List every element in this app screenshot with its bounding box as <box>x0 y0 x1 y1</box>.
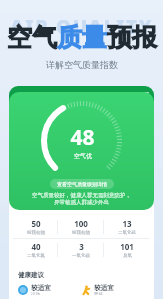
staticText: 3 <box>79 241 84 252</box>
button[interactable]: 3 <box>58 239 104 261</box>
staticText: 空气优 <box>74 152 92 160</box>
staticText: 预报 <box>107 22 157 53</box>
button[interactable]: 运动 <box>18 284 81 295</box>
staticText: 健康建议 <box>18 271 44 279</box>
staticText: 运动 <box>31 292 40 295</box>
staticText: 查看空气质量级别详情 <box>57 181 107 187</box>
other: 运动 <box>18 285 28 295</box>
staticText: 较适宜 <box>31 284 51 292</box>
staticText: 臭氧 <box>123 253 132 259</box>
staticText: 质量 <box>57 22 107 53</box>
staticText: 空气质量较好，健康人群无需刻意防护， <box>32 192 131 199</box>
staticText: 48 <box>70 123 95 152</box>
staticText: AIR QUALITY <box>10 14 153 40</box>
staticText: 细颗粒物 <box>27 230 45 236</box>
button[interactable]: 101 <box>104 239 150 261</box>
button[interactable]: 48 <box>9 92 154 210</box>
staticText: 二氧化氮 <box>27 253 45 259</box>
staticText: 13:30 <box>136 91 149 98</box>
staticText: 空气 <box>7 22 57 53</box>
staticText: 细颗粒物 <box>72 230 90 236</box>
button[interactable]: 查看空气质量级别详情 <box>57 181 107 187</box>
button[interactable]: 50 <box>13 216 58 238</box>
staticText: 13 <box>122 218 132 229</box>
staticText: 较适宜 <box>94 284 114 292</box>
staticText: 一氧化碳 <box>72 253 90 259</box>
button[interactable]: 40 <box>13 239 58 261</box>
staticText: 100 <box>74 218 88 229</box>
staticText: 二氧化硫 <box>118 230 136 236</box>
staticText: 50 <box>31 218 41 229</box>
button[interactable]: 13 <box>104 216 150 238</box>
button[interactable]: 晨练 <box>81 284 145 295</box>
staticText: 晨练 <box>94 292 103 295</box>
staticText: 101 <box>120 241 134 252</box>
other: 晨练 <box>81 285 91 295</box>
staticText: 异常敏感人群减少外出 <box>54 199 109 206</box>
button[interactable]: 100 <box>58 216 104 238</box>
staticText: 40 <box>31 241 41 252</box>
staticText: 详解空气质量指数 <box>46 59 118 70</box>
